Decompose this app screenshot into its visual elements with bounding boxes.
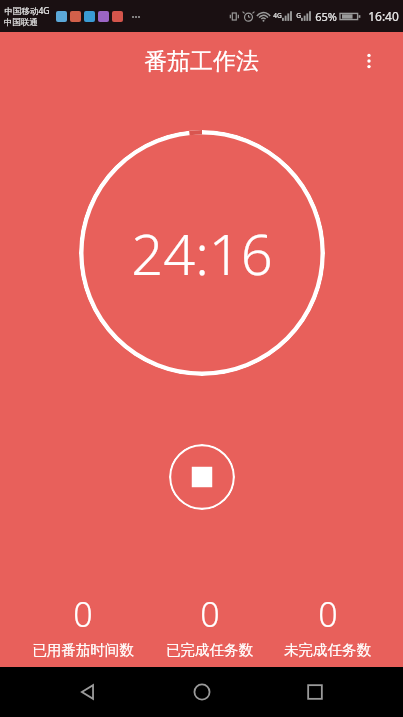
staticText: 0 [200, 591, 220, 637]
staticText: 中国联通 [4, 17, 38, 28]
staticText: 0 [73, 591, 93, 637]
staticText: G [296, 11, 301, 20]
button[interactable]: Stop [169, 444, 235, 510]
staticText: 4G [273, 11, 282, 20]
button[interactable]: 24:16 [79, 130, 325, 376]
staticText: 番茄工作法 [144, 47, 259, 76]
staticText: 16:40 [368, 8, 399, 24]
staticText: 未完成任务数 [284, 641, 371, 659]
button[interactable]: 0 [164, 591, 255, 659]
staticText: 已用番茄时间数 [32, 641, 134, 659]
button[interactable]: 0 [282, 591, 373, 659]
staticText: 中国移动4G [4, 5, 50, 17]
button[interactable]: Recent apps [289, 667, 341, 717]
staticText: 24:16 [131, 215, 273, 291]
staticText: 已完成任务数 [166, 641, 253, 659]
button[interactable]: More options [353, 45, 385, 77]
staticText: 0 [318, 591, 338, 637]
staticText: 65% [315, 9, 337, 24]
button[interactable]: 0 [30, 591, 136, 659]
button[interactable]: Home [176, 667, 228, 717]
button[interactable]: Back [62, 667, 114, 717]
